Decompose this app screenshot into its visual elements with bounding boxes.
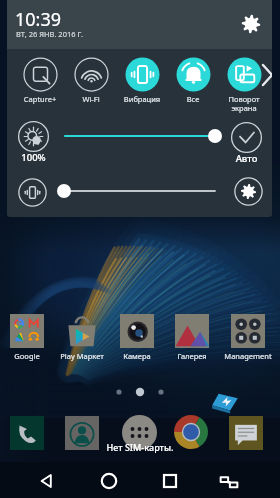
staticText: 100% [15, 151, 52, 164]
button[interactable]: Management [222, 314, 274, 358]
button[interactable]: Settings [241, 14, 261, 34]
staticText: Wi-Fi [66, 94, 116, 104]
button[interactable]: App [10, 416, 44, 450]
button[interactable]: App [65, 416, 99, 450]
button[interactable]: Все [168, 57, 218, 102]
staticText: Нет SIM-карты. [0, 441, 280, 453]
button[interactable]: App [229, 416, 263, 450]
button[interactable]: Sound mode [18, 178, 47, 207]
staticText: ВТ, 26 ЯНВ. 2016 Г. [16, 29, 83, 39]
button[interactable]: Wi-Fi [66, 57, 116, 102]
staticText: Google [1, 351, 53, 361]
button[interactable]: Sound settings [234, 177, 263, 206]
staticText: Вибрация [117, 94, 167, 104]
button[interactable]: Capture+ [15, 57, 65, 102]
staticText: Все [168, 94, 218, 104]
button[interactable]: Apps [122, 415, 157, 450]
button[interactable]: Back [36, 471, 56, 491]
button[interactable]: Поворот экрана [219, 57, 269, 111]
button[interactable]: App [174, 415, 208, 449]
button[interactable]: Auto brightness [231, 122, 262, 153]
button[interactable]: Вибрация [117, 57, 167, 102]
button[interactable]: Brightness [18, 121, 49, 152]
button[interactable]: Split screen [218, 471, 240, 493]
button[interactable]: Google [1, 314, 53, 358]
staticText: Авто [228, 152, 265, 165]
staticText: Галерея [166, 351, 218, 361]
staticText: Камера [111, 351, 163, 361]
button[interactable]: Recents [160, 471, 180, 491]
button[interactable]: Камера [111, 314, 163, 358]
staticText: Play Маркет [56, 351, 108, 361]
button[interactable]: Home [99, 471, 119, 491]
staticText: Поворот экрана [219, 94, 269, 113]
button[interactable]: Play Маркет [56, 314, 108, 358]
staticText: Management [222, 351, 274, 361]
button[interactable]: Галерея [166, 314, 218, 358]
staticText: Capture+ [15, 94, 65, 104]
button[interactable]: Widget [209, 388, 241, 420]
staticText: 10:39 [15, 7, 62, 32]
